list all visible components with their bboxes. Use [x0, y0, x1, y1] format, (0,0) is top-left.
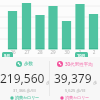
staticText: 歩	[46, 80, 49, 85]
staticText: 歩数	[24, 61, 33, 67]
staticText: 31,366 歩/日	[13, 88, 37, 93]
staticText: 29	[49, 49, 57, 55]
staticText: 30	[63, 49, 71, 55]
staticText: 消費カロリー	[15, 95, 40, 100]
staticText: 1	[76, 49, 84, 55]
button[interactable]: 10月	[77, 53, 86, 58]
staticText: 10月	[77, 53, 86, 58]
other: Steps	[16, 61, 22, 67]
other: Average	[57, 61, 63, 67]
button[interactable]: 9月	[4, 53, 11, 58]
staticText: 27	[23, 49, 31, 55]
staticText: 39,379	[54, 70, 92, 86]
staticText: 219,560	[0, 70, 45, 86]
staticText: 2	[90, 49, 98, 55]
button[interactable]: Average	[50, 57, 100, 100]
button[interactable]: Steps	[0, 57, 49, 100]
staticText: 歩	[93, 80, 97, 85]
staticText: 9月	[4, 53, 11, 58]
staticText: 30代男性平均	[65, 61, 93, 67]
staticText: 消費カロリー	[65, 95, 90, 100]
staticText: 26	[9, 49, 17, 55]
staticText: 28	[36, 49, 44, 55]
button[interactable]: 26	[0, 0, 100, 57]
staticText: 5,625 歩/日	[65, 88, 86, 93]
